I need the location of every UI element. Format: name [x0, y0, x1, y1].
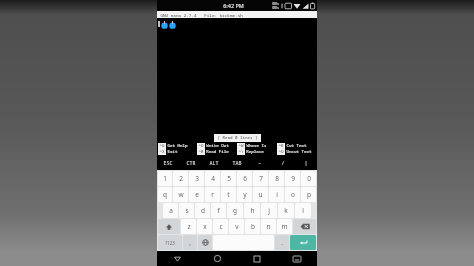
staticText: 7 [259, 174, 263, 183]
button[interactable]: 8 [269, 171, 284, 186]
button[interactable]: m [277, 219, 292, 234]
button[interactable]: w [173, 187, 188, 202]
button[interactable]: g [227, 203, 243, 218]
button[interactable]: 6 [237, 171, 252, 186]
button[interactable]: Shift [158, 219, 180, 234]
staticText: m [281, 222, 288, 231]
staticText: i [276, 190, 278, 199]
staticText: e [195, 190, 199, 199]
button[interactable]: . [275, 235, 289, 250]
button[interactable]: f [211, 203, 226, 218]
staticText: Get Help [167, 143, 188, 149]
button[interactable]: k [278, 203, 294, 218]
button[interactable]: Recent apps [237, 251, 277, 266]
staticText: − [258, 160, 262, 167]
button[interactable]: u [253, 187, 268, 202]
button[interactable]: d [195, 203, 210, 218]
staticText: x [203, 222, 207, 231]
staticText: ^\ [238, 149, 244, 155]
button[interactable]: ?123 [158, 235, 182, 250]
button[interactable]: Backspace [293, 219, 316, 234]
button[interactable]: 1 [158, 171, 172, 186]
button[interactable]: t [221, 187, 236, 202]
button[interactable]: 0 [301, 171, 316, 186]
button[interactable]: n [261, 219, 276, 234]
staticText: z [187, 222, 191, 231]
button[interactable]: j [261, 203, 277, 218]
button[interactable]: z [181, 219, 196, 234]
staticText: Replace [246, 149, 264, 155]
staticText: u [258, 190, 263, 199]
button[interactable]: / [271, 157, 294, 170]
staticText: j [268, 206, 270, 215]
staticText: f [217, 206, 220, 215]
button[interactable]: ALT [202, 157, 225, 170]
staticText: ESC [163, 160, 173, 167]
button[interactable]: | [294, 157, 317, 170]
button[interactable]: r [205, 187, 220, 202]
staticText: 0K/s [272, 2, 279, 6]
button[interactable]: 3 [189, 171, 204, 186]
button[interactable]: v [229, 219, 244, 234]
staticText: Uncut Text [286, 149, 312, 155]
staticText: 2 [179, 174, 183, 183]
button[interactable]: 9 [285, 171, 300, 186]
staticText: File: kickme.sh [204, 12, 243, 18]
button[interactable]: , [183, 235, 197, 250]
button[interactable]: x [197, 219, 212, 234]
staticText: g [233, 206, 237, 215]
staticText: ^G [159, 143, 165, 149]
staticText: w [178, 190, 184, 199]
staticText: ?123 [165, 240, 175, 246]
staticText: ^K [278, 143, 284, 149]
staticText: 3 [195, 174, 199, 183]
staticText: l [302, 206, 304, 215]
staticText: ALT [209, 160, 219, 167]
button[interactable]: 4 [205, 171, 220, 186]
button[interactable]: l [295, 203, 311, 218]
button[interactable]: q [158, 187, 172, 202]
staticText: ^O [198, 143, 204, 149]
button[interactable]: c [213, 219, 228, 234]
staticText: h [250, 206, 255, 215]
button[interactable]: Home [197, 251, 237, 266]
button[interactable]: 2 [173, 171, 188, 186]
button[interactable]: s [179, 203, 194, 218]
button[interactable]: i [269, 187, 284, 202]
staticText: n [266, 222, 271, 231]
staticText: Write Out [206, 143, 229, 149]
staticText: v [235, 222, 239, 231]
button[interactable]: − [248, 157, 271, 170]
staticText: GNU nano 2.7.4 [160, 12, 197, 18]
staticText: 1 [163, 174, 167, 183]
staticText: . [281, 238, 283, 247]
staticText: ^W [238, 143, 244, 149]
button[interactable]: o [285, 187, 300, 202]
staticText: TAB [232, 160, 242, 167]
staticText: r [211, 190, 214, 199]
button[interactable]: 7 [253, 171, 268, 186]
button[interactable]: CTR [179, 157, 202, 170]
staticText: t [227, 190, 230, 199]
staticText: [ Read 0 lines ] [217, 135, 258, 141]
button[interactable]: h [244, 203, 260, 218]
button[interactable]: a [163, 203, 178, 218]
button[interactable]: Hide keyboard [157, 251, 197, 266]
button[interactable]: 5 [221, 171, 236, 186]
staticText: q [163, 190, 167, 199]
staticText: 6:42 PM [223, 2, 244, 9]
button[interactable]: y [237, 187, 252, 202]
button[interactable]: TAB [225, 157, 248, 170]
staticText: k [284, 206, 288, 215]
staticText: CTR [186, 160, 196, 167]
button[interactable]: Change language [198, 235, 212, 250]
button[interactable]: e [189, 187, 204, 202]
button[interactable]: p [301, 187, 316, 202]
button[interactable]: b [245, 219, 260, 234]
staticText: o [291, 190, 295, 199]
button[interactable]: Enter [290, 235, 316, 250]
button[interactable]: ESC [157, 157, 179, 170]
button[interactable]: Switch input method [277, 251, 317, 266]
